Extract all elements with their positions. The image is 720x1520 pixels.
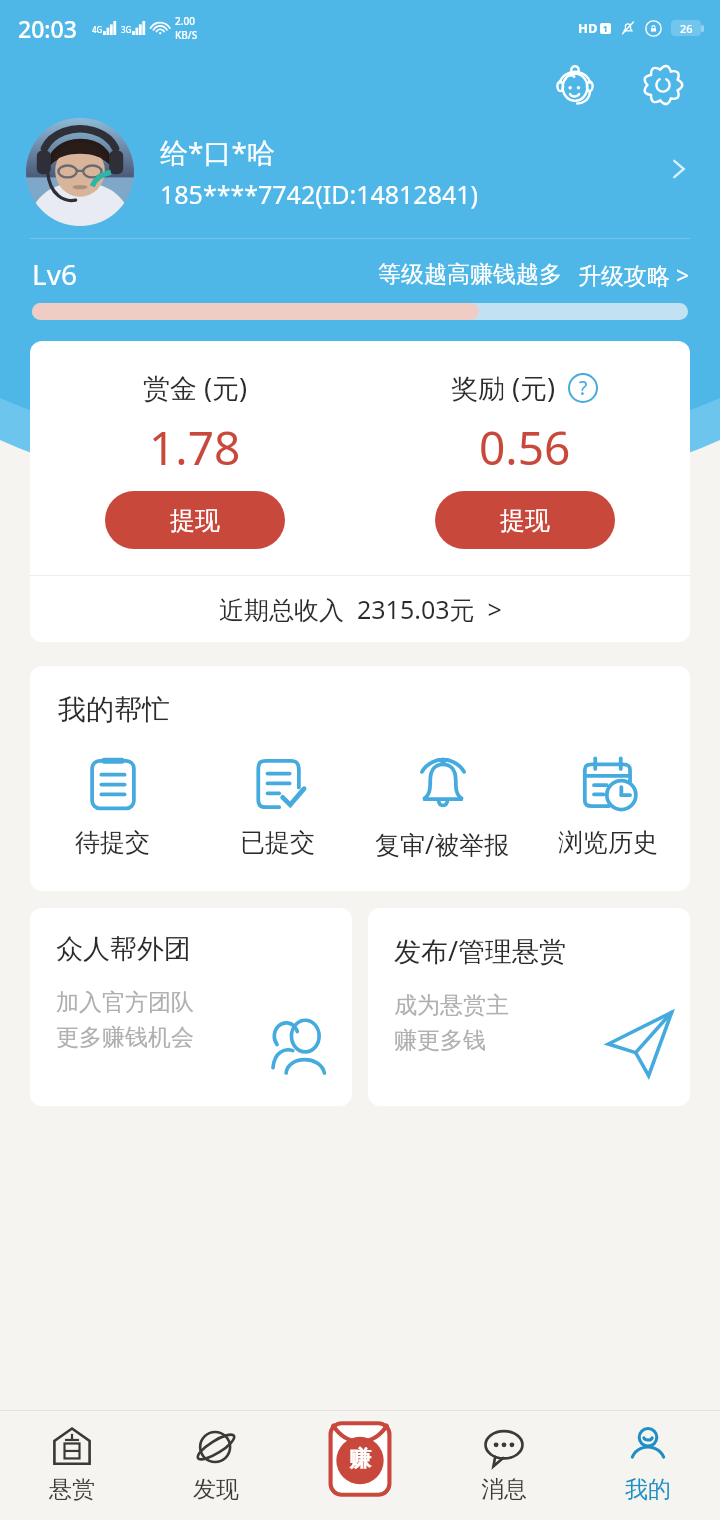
button[interactable]: 提现 bbox=[105, 491, 285, 549]
staticText: 我的 bbox=[625, 1475, 671, 1504]
staticText: 4G bbox=[92, 24, 103, 35]
staticText: ? bbox=[579, 375, 588, 401]
staticText: 20:03 bbox=[18, 13, 77, 44]
button[interactable]: 悬赏 bbox=[0, 1411, 144, 1520]
staticText: 待提交 bbox=[75, 827, 150, 858]
button[interactable]: 待提交 bbox=[30, 749, 195, 862]
staticText: 消息 bbox=[481, 1475, 527, 1504]
staticText: 1 bbox=[603, 23, 608, 34]
staticText: 1.78 bbox=[149, 416, 241, 479]
button[interactable]: 消息 bbox=[432, 1411, 576, 1520]
staticText: 奖励 (元) bbox=[451, 369, 556, 406]
button[interactable]: Customer service bbox=[546, 56, 604, 114]
button[interactable]: 发布/管理悬赏 bbox=[368, 908, 690, 1106]
button[interactable]: 浏览历史 bbox=[525, 749, 690, 862]
button[interactable]: 发现 bbox=[144, 1411, 288, 1520]
staticText: Lv6 bbox=[32, 255, 77, 293]
button[interactable]: 给*口*哈 bbox=[0, 114, 720, 230]
button[interactable]: 升级攻略 > bbox=[578, 259, 690, 290]
button[interactable]: 赚 bbox=[288, 1411, 432, 1520]
staticText: 赚更多钱 bbox=[394, 1026, 486, 1055]
staticText: 0.56 bbox=[479, 416, 571, 479]
staticText: 已提交 bbox=[240, 827, 315, 858]
button[interactable]: Help bbox=[566, 371, 600, 405]
staticText: 我的帮忙 bbox=[58, 692, 170, 727]
staticText: 发布/管理悬赏 bbox=[394, 932, 567, 969]
staticText: 升级攻略 > bbox=[578, 259, 690, 290]
button[interactable]: 众人帮外团 bbox=[30, 908, 352, 1106]
button[interactable]: Settings bbox=[634, 56, 692, 114]
staticText: KB/S bbox=[175, 28, 198, 42]
button[interactable]: 已提交 bbox=[195, 749, 360, 862]
staticText: 给*口*哈 bbox=[160, 133, 275, 171]
staticText: 3G bbox=[121, 24, 132, 35]
staticText: HD bbox=[578, 19, 598, 37]
staticText: 悬赏 bbox=[49, 1475, 95, 1504]
staticText: 26 bbox=[680, 21, 693, 36]
staticText: 发现 bbox=[193, 1475, 239, 1504]
button[interactable]: 提现 bbox=[435, 491, 615, 549]
staticText: 近期总收入 2315.03元 > bbox=[219, 592, 502, 626]
staticText: 赚 bbox=[349, 1445, 371, 1473]
staticText: 等级越高赚钱越多 bbox=[378, 260, 562, 289]
staticText: 浏览历史 bbox=[558, 827, 658, 858]
staticText: 众人帮外团 bbox=[56, 932, 191, 966]
button[interactable]: 近期总收入 2315.03元 > bbox=[30, 576, 690, 642]
staticText: 复审/被举报 bbox=[375, 827, 510, 861]
staticText: 提现 bbox=[500, 505, 550, 536]
staticText: 2.00 bbox=[175, 14, 195, 28]
staticText: 成为悬赏主 bbox=[394, 991, 509, 1020]
staticText: 提现 bbox=[170, 505, 220, 536]
staticText: 加入官方团队 bbox=[56, 988, 194, 1017]
button[interactable]: 我的 bbox=[576, 1411, 720, 1520]
staticText: 更多赚钱机会 bbox=[56, 1023, 194, 1052]
staticText: 赏金 (元) bbox=[143, 369, 248, 406]
staticText: 185****7742(ID:14812841) bbox=[160, 177, 479, 211]
button[interactable]: 复审/被举报 bbox=[360, 749, 525, 865]
